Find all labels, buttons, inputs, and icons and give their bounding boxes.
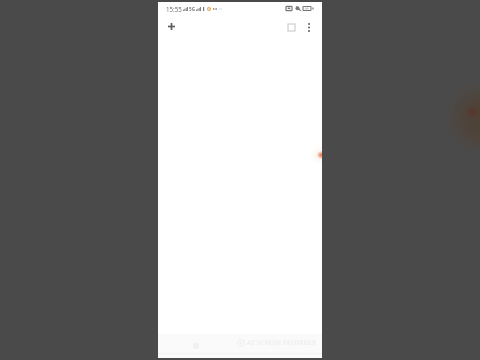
staticText: 15:55 bbox=[166, 5, 182, 13]
button[interactable]: More options bbox=[302, 20, 316, 34]
button[interactable]: Add bbox=[165, 20, 178, 33]
button[interactable]: Recents bbox=[191, 341, 201, 351]
staticText: 5G bbox=[189, 6, 195, 12]
staticText: AZ SCREEN RECORDER bbox=[247, 338, 317, 347]
button[interactable]: Select bbox=[284, 20, 298, 34]
